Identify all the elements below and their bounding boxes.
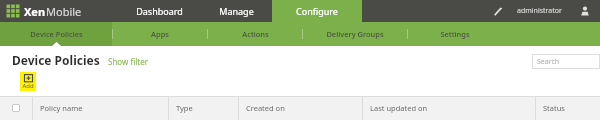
staticText: Status	[543, 103, 565, 113]
button[interactable]: Add policy	[22, 73, 34, 90]
button[interactable]: Apps	[113, 22, 207, 46]
button[interactable]: Settings	[408, 22, 502, 46]
staticText: Created on	[246, 103, 285, 113]
button[interactable]: Select all	[12, 104, 20, 112]
button[interactable]: Last updated on	[363, 96, 535, 120]
staticText: Configure	[296, 5, 338, 17]
staticText: Device Policies	[30, 29, 83, 39]
staticText: Dashboard	[136, 5, 183, 17]
staticText: Add	[22, 82, 34, 90]
button[interactable]: Delivery Groups	[303, 22, 407, 46]
button[interactable]: Manage	[200, 0, 272, 22]
button[interactable]: Search	[532, 54, 600, 69]
button[interactable]: Device Policies	[0, 22, 112, 46]
button[interactable]: Account	[576, 2, 594, 20]
button[interactable]: Settings	[489, 2, 507, 20]
staticText: Settings	[440, 29, 470, 39]
staticText: Device Policies	[12, 52, 100, 68]
staticText: Search	[537, 57, 560, 67]
staticText: Delivery Groups	[326, 29, 384, 39]
staticText: Type	[176, 103, 193, 113]
button[interactable]: Show filter	[108, 56, 148, 67]
staticText: Manage	[219, 5, 254, 17]
button[interactable]: Actions	[208, 22, 302, 46]
staticText: Actions	[242, 29, 269, 39]
button[interactable]: administrator	[517, 6, 562, 16]
button[interactable]: Status	[536, 96, 600, 120]
staticText: Apps	[151, 29, 169, 39]
staticText: Last updated on	[370, 103, 428, 113]
button[interactable]: Created on	[239, 96, 362, 120]
button[interactable]: Dashboard	[118, 0, 200, 22]
button[interactable]: Type	[169, 96, 238, 120]
button[interactable]: Configure	[272, 0, 362, 22]
staticText: Policy name	[40, 103, 83, 113]
staticText: Mobile	[46, 4, 82, 19]
button[interactable]: XenMobile home	[6, 4, 20, 18]
staticText: Xen	[24, 4, 46, 19]
button[interactable]: Policy name	[33, 96, 168, 120]
